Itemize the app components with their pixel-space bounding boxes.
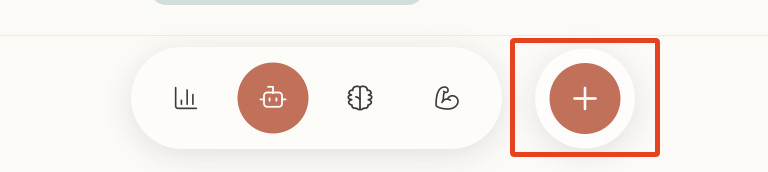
button[interactable]: Mind	[316, 47, 403, 149]
button[interactable]: Add	[535, 48, 635, 148]
button[interactable]: Assistant	[229, 47, 316, 149]
button[interactable]: Workout	[403, 47, 490, 149]
button[interactable]: Progress	[142, 47, 229, 149]
